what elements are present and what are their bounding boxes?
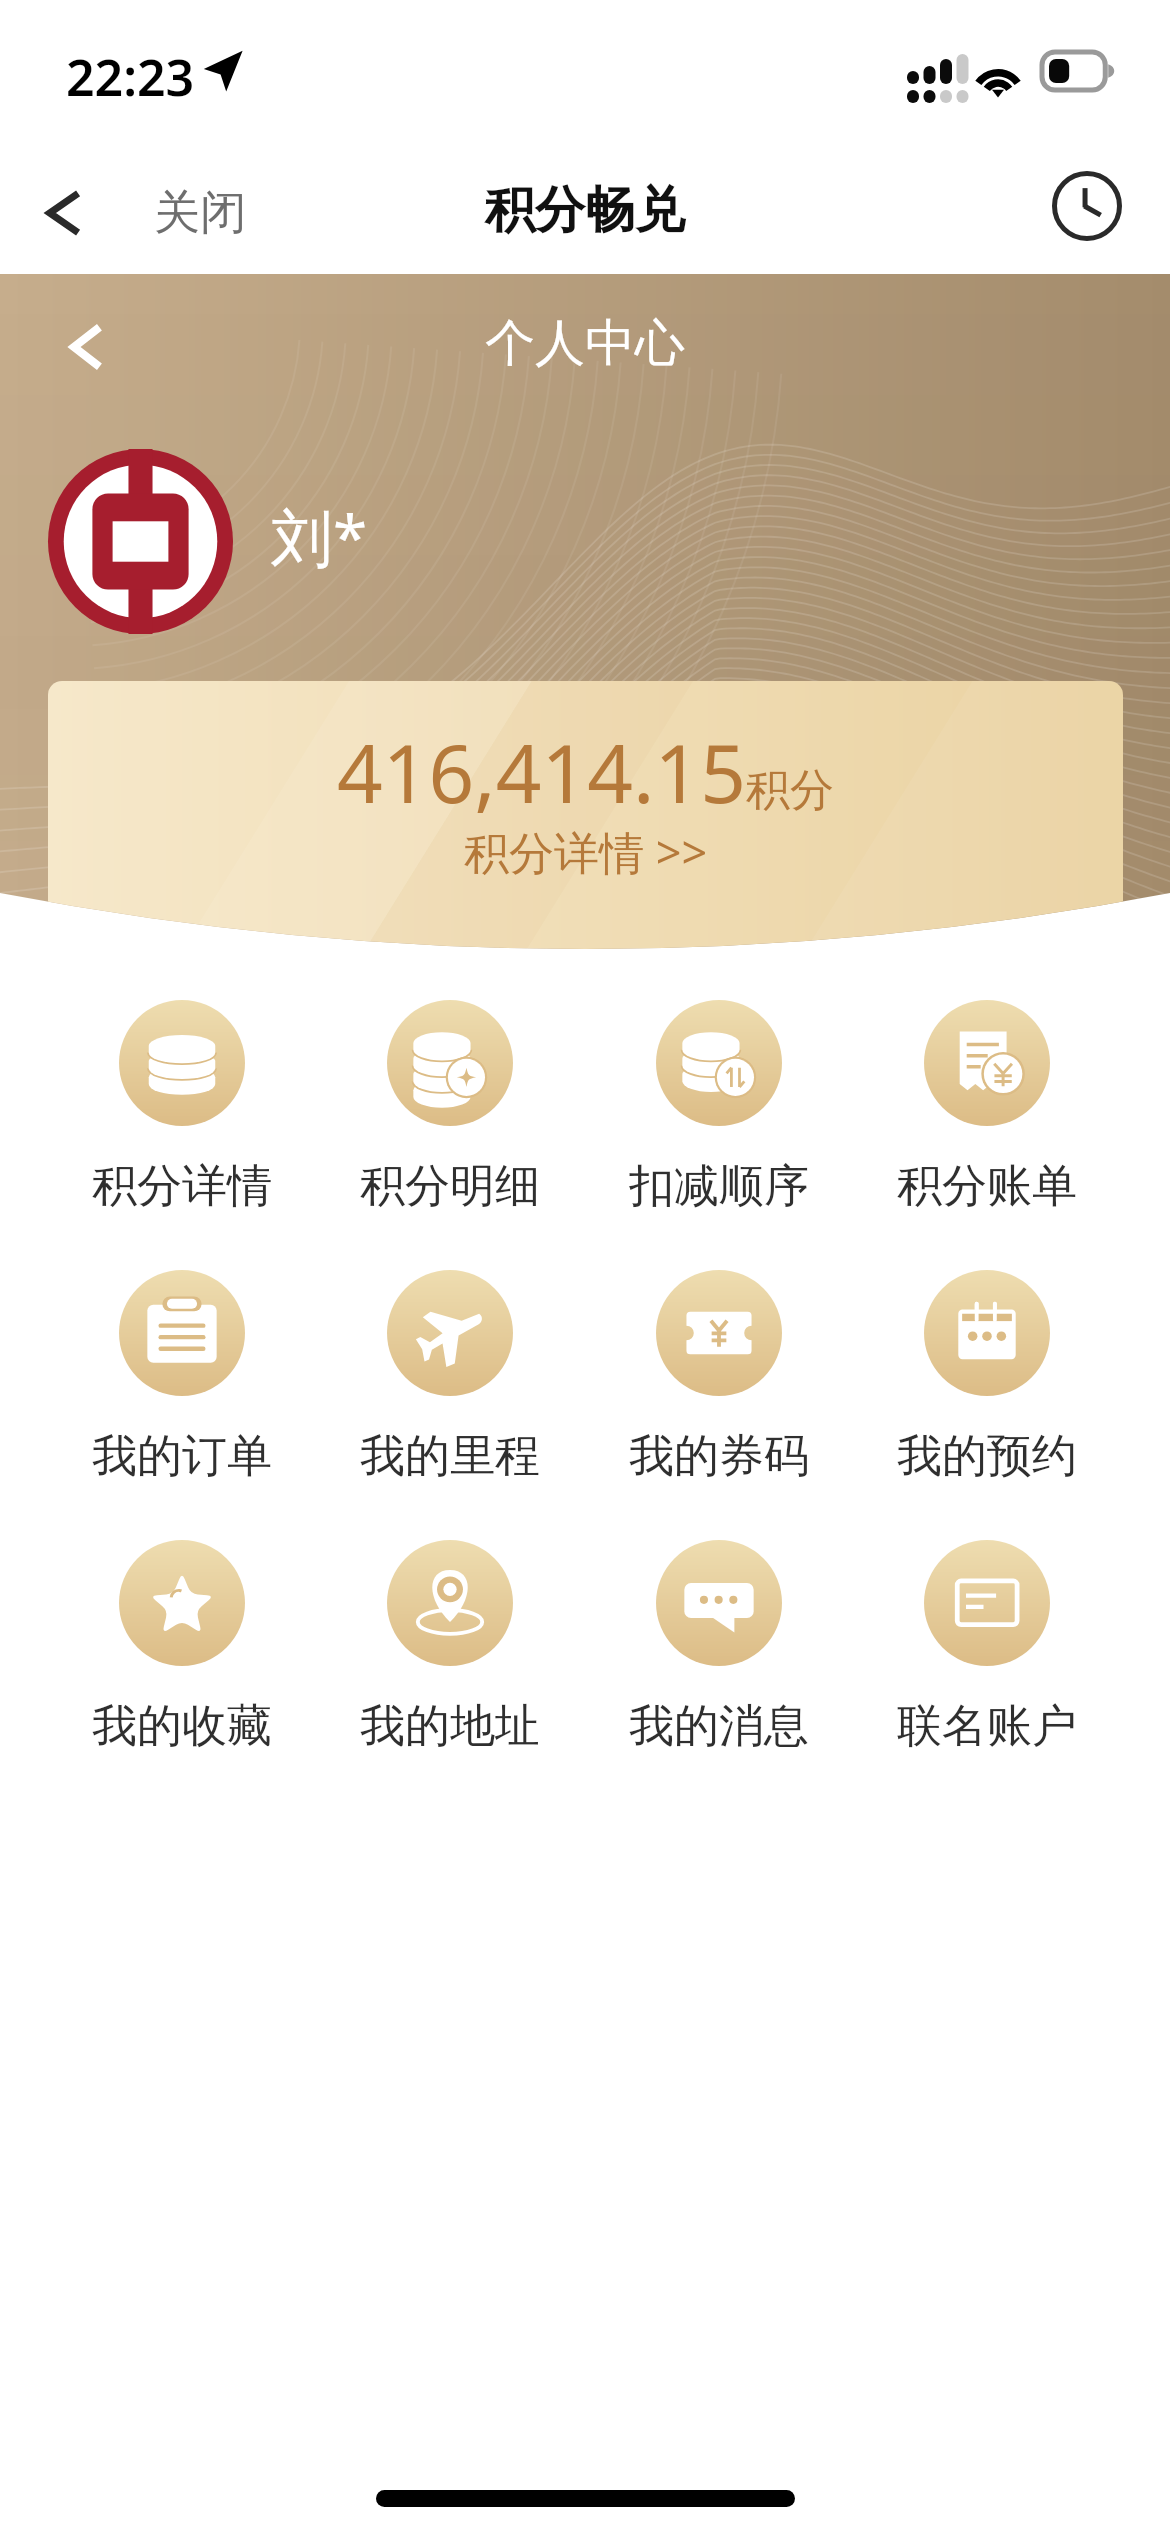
staticText: 积分畅兑 — [485, 179, 685, 242]
staticText: 关闭 — [154, 184, 246, 242]
staticText: 积分 — [746, 763, 834, 818]
staticText: 我的消息 — [629, 1698, 809, 1755]
staticText: 我的地址 — [360, 1698, 540, 1755]
button[interactable]: 我的地址 — [316, 1540, 584, 1755]
staticText: 416,414.15 — [337, 717, 746, 826]
staticText: 积分详情 — [92, 1158, 272, 1215]
button[interactable]: 我的消息 — [585, 1540, 853, 1755]
staticText: 积分账单 — [897, 1158, 1077, 1215]
staticText: 积分明细 — [360, 1158, 540, 1215]
staticText: 我的订单 — [92, 1428, 272, 1485]
button[interactable]: 我的订单 — [48, 1270, 316, 1485]
button[interactable]: 我的预约 — [853, 1270, 1121, 1485]
staticText: 22:23 — [66, 43, 195, 111]
staticText: 我的券码 — [629, 1428, 809, 1485]
button[interactable]: 我的里程 — [316, 1270, 584, 1485]
staticText: 刘* — [271, 494, 368, 579]
staticText: 我的里程 — [360, 1428, 540, 1485]
button[interactable]: 积分明细 — [316, 1000, 584, 1215]
staticText: 我的收藏 — [92, 1698, 272, 1755]
button[interactable]: 我的收藏 — [48, 1540, 316, 1755]
staticText: 积分详情 >> — [464, 821, 708, 882]
button[interactable]: 联名账户 — [853, 1540, 1121, 1755]
staticText: 扣减顺序 — [629, 1158, 809, 1215]
button[interactable]: 我的券码 — [585, 1270, 853, 1485]
button[interactable]: Back — [60, 318, 118, 376]
staticText: 我的预约 — [897, 1428, 1077, 1485]
button[interactable]: 扣减顺序 — [585, 1000, 853, 1215]
staticText: 个人中心 — [485, 312, 685, 375]
button[interactable]: 416,414.15 — [48, 681, 1123, 1005]
button[interactable]: 积分账单 — [853, 1000, 1121, 1215]
button[interactable]: 关闭 — [34, 184, 246, 242]
staticText: 联名账户 — [897, 1698, 1077, 1755]
button[interactable]: History — [1045, 164, 1129, 248]
button[interactable]: 积分详情 — [48, 1000, 316, 1215]
